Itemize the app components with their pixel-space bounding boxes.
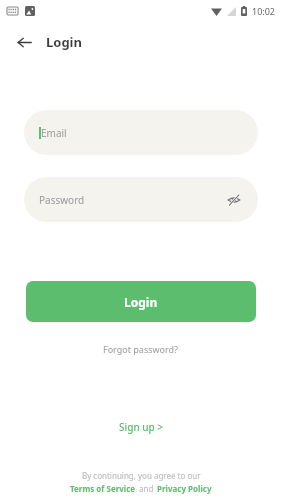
staticText: and — [139, 483, 154, 494]
staticText: Forgot password? — [103, 343, 179, 355]
button[interactable]: Privacy Policy — [157, 483, 212, 494]
button[interactable]: Password — [24, 177, 258, 222]
button[interactable]: Sign up > — [111, 416, 172, 438]
staticText: Sign up > — [119, 420, 164, 434]
button[interactable]: Forgot password? — [97, 340, 185, 358]
staticText: Login — [46, 33, 82, 51]
staticText: 10:02 — [252, 5, 276, 17]
staticText: Terms of Service — [70, 483, 136, 494]
staticText: Email — [41, 126, 67, 140]
button[interactable]: Terms of Service — [70, 483, 136, 494]
staticText: Privacy Policy — [157, 483, 212, 494]
staticText: Login — [124, 294, 158, 310]
button[interactable]: Login — [26, 281, 256, 322]
staticText: By continuing, you agree to our — [82, 470, 201, 481]
button[interactable]: Show password — [224, 190, 244, 210]
button[interactable]: Back — [10, 28, 38, 56]
staticText: Password — [39, 193, 85, 207]
button[interactable]: Email — [24, 110, 258, 155]
